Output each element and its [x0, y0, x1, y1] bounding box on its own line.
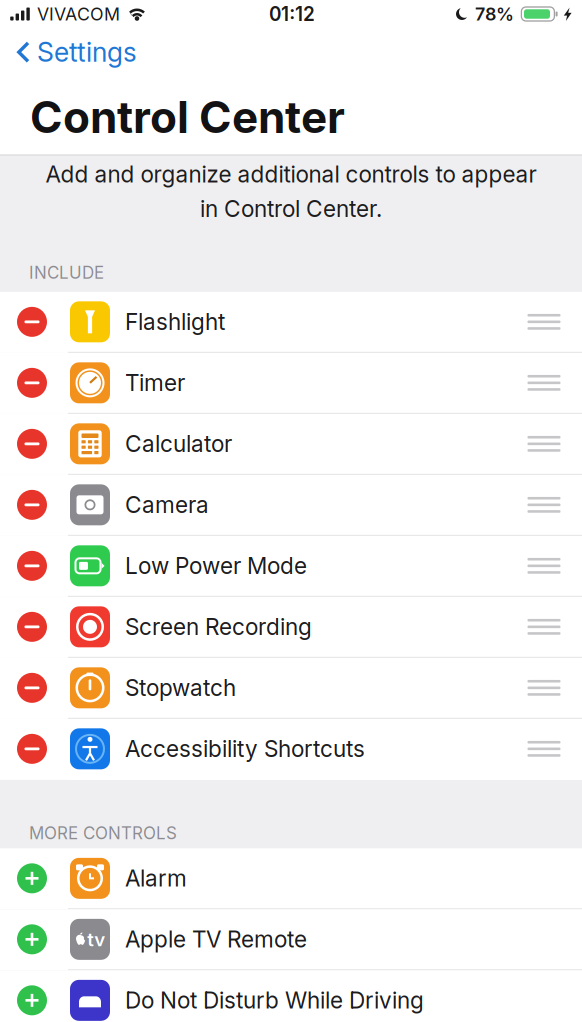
button[interactable]: Add Apple TV Remote	[6, 909, 58, 970]
staticText: Settings	[37, 36, 137, 68]
staticText: MORE CONTROLS	[29, 823, 177, 843]
button[interactable]: Remove Timer	[6, 352, 58, 413]
button[interactable]: Reorder Stopwatch	[522, 657, 566, 718]
staticText: Screen Recording	[125, 613, 312, 640]
button[interactable]: Reorder Accessibility Shortcuts	[522, 718, 566, 779]
button[interactable]: Reorder Camera	[522, 474, 566, 535]
button[interactable]: Reorder Screen Recording	[522, 596, 566, 657]
button[interactable]: Remove Accessibility Shortcuts	[6, 718, 58, 779]
staticText: Do Not Disturb While Driving	[125, 987, 424, 1014]
staticText: Apple TV Remote	[125, 926, 307, 953]
button[interactable]: Add Alarm	[6, 848, 58, 909]
staticText: Low Power Mode	[125, 552, 307, 579]
button[interactable]: Remove Flashlight	[6, 291, 58, 352]
button[interactable]: Reorder Low Power Mode	[522, 535, 566, 596]
button[interactable]: Settings	[0, 28, 151, 70]
staticText: VIVACOM	[37, 3, 120, 25]
button[interactable]: Reorder Calculator	[522, 413, 566, 474]
button[interactable]: Reorder Flashlight	[522, 291, 566, 352]
staticText: tv	[87, 928, 105, 951]
staticText: Stopwatch	[125, 674, 236, 701]
button[interactable]: Remove Screen Recording	[6, 596, 58, 657]
staticText: Add and organize additional controls to …	[45, 160, 536, 188]
button[interactable]: Add Do Not Disturb While Driving	[6, 970, 58, 1022]
button[interactable]: Remove Low Power Mode	[6, 535, 58, 596]
staticText: in Control Center.	[200, 195, 382, 222]
staticText: Camera	[125, 491, 209, 518]
staticText: Flashlight	[125, 308, 225, 335]
staticText: Accessibility Shortcuts	[125, 735, 365, 762]
button[interactable]: Remove Calculator	[6, 413, 58, 474]
staticText: Calculator	[125, 430, 232, 457]
staticText: Alarm	[125, 865, 187, 892]
staticText: Timer	[125, 369, 185, 396]
staticText: INCLUDE	[29, 262, 104, 283]
staticText: Control Center	[30, 90, 345, 143]
staticText: 78%	[475, 3, 514, 25]
staticText: 01:12	[269, 2, 315, 25]
button[interactable]: Remove Camera	[6, 474, 58, 535]
button[interactable]: Remove Stopwatch	[6, 657, 58, 718]
button[interactable]: Reorder Timer	[522, 352, 566, 413]
